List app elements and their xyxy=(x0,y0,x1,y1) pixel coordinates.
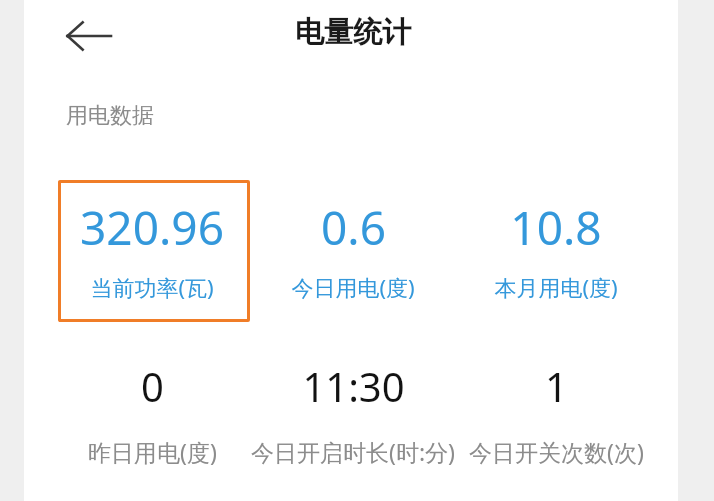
button[interactable] xyxy=(58,180,250,322)
staticText: 昨日用电(度) xyxy=(88,436,217,467)
staticText: 11:30 xyxy=(302,359,405,413)
staticText: 用电数据 xyxy=(66,102,154,130)
staticText: 1 xyxy=(545,359,568,413)
button[interactable]: Back xyxy=(52,11,126,61)
staticText: 今日开启时长(时:分) xyxy=(251,436,455,467)
staticText: 今日用电(度) xyxy=(291,272,415,302)
staticText: 当前功率(瓦) xyxy=(90,272,214,302)
staticText: 本月用电(度) xyxy=(494,272,618,302)
staticText: 0.6 xyxy=(321,196,386,259)
staticText: 0 xyxy=(141,359,164,413)
staticText: 今日开关次数(次) xyxy=(469,436,644,467)
staticText: 10.8 xyxy=(510,196,602,259)
staticText: 320.96 xyxy=(80,196,224,259)
staticText: 电量统计 xyxy=(295,14,411,51)
